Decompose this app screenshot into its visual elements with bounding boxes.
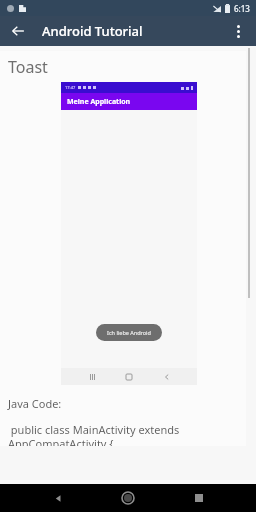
staticText: Android Tutorial [42, 22, 143, 40]
button[interactable]: Ich liebe Android [96, 324, 162, 341]
button[interactable]: Back [4, 17, 32, 45]
staticText: 17:47 [65, 85, 76, 90]
button[interactable]: Recents [186, 485, 212, 511]
button[interactable]: More options [224, 17, 252, 45]
staticText: Toast [8, 56, 48, 78]
button[interactable]: Recents [85, 370, 99, 384]
staticText: Ich liebe Android [107, 329, 151, 336]
button[interactable]: Back [160, 370, 174, 384]
staticText: 6:13 [234, 3, 250, 14]
staticText: public class MainActivity extends AppCom… [8, 422, 230, 446]
button[interactable]: Back [45, 485, 71, 511]
staticText: Java Code: [8, 396, 62, 411]
button[interactable]: Home [115, 485, 141, 511]
button[interactable]: Home [122, 370, 136, 384]
staticText: Meine Application [67, 97, 131, 107]
